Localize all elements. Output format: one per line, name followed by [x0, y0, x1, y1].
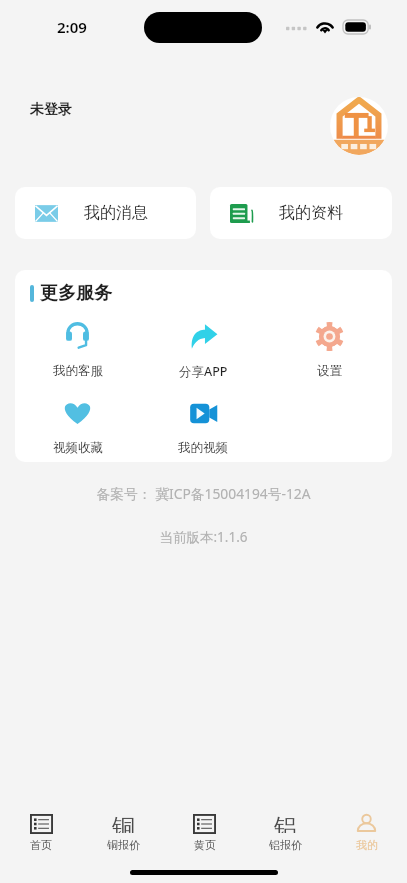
- button[interactable]: 黄页: [164, 807, 245, 859]
- staticText: 我的: [356, 838, 378, 852]
- staticText: 黄页: [194, 838, 216, 852]
- button[interactable]: 我的客服: [15, 322, 140, 379]
- staticText: 铝: [274, 813, 297, 833]
- button[interactable]: 设置: [266, 322, 392, 379]
- staticText: 首页: [30, 838, 52, 852]
- button[interactable]: 头像: [330, 97, 388, 155]
- button[interactable]: 视频收藏: [15, 399, 140, 456]
- button[interactable]: 我的消息: [15, 187, 196, 239]
- button[interactable]: 铜: [82, 807, 164, 859]
- staticText: 当前版本:1.1.6: [0, 528, 407, 546]
- staticText: 我的消息: [84, 203, 148, 223]
- button[interactable]: 分享APP: [140, 322, 266, 380]
- button[interactable]: 未登录: [30, 101, 72, 119]
- staticText: 铝报价: [269, 838, 302, 852]
- staticText: 视频收藏: [53, 440, 103, 456]
- staticText: 2:09: [57, 17, 87, 37]
- button[interactable]: 首页: [0, 807, 82, 859]
- staticText: 更多服务: [40, 282, 112, 305]
- staticText: 备案号： 冀ICP备15004194号-12A: [0, 484, 407, 503]
- staticText: 我的视频: [178, 440, 228, 456]
- staticText: 铜报价: [107, 838, 140, 852]
- staticText: 我的客服: [53, 363, 103, 379]
- button[interactable]: 铝: [245, 807, 326, 859]
- button[interactable]: 我的视频: [140, 399, 266, 456]
- staticText: 设置: [317, 363, 342, 379]
- staticText: 我的资料: [279, 203, 343, 223]
- staticText: 分享APP: [179, 363, 228, 380]
- button[interactable]: 我的资料: [210, 187, 392, 239]
- staticText: 铜: [112, 813, 135, 833]
- button[interactable]: 我的: [326, 807, 407, 859]
